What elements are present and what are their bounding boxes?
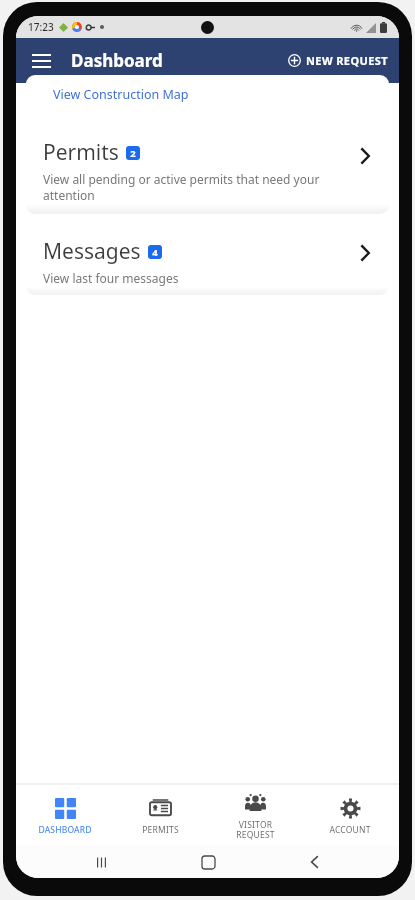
button[interactable]: DASHBOARD (19, 784, 111, 846)
staticText: 2 (130, 147, 136, 160)
button[interactable]: NEW REQUEST (284, 48, 392, 73)
button[interactable]: Messages (26, 227, 389, 295)
button[interactable]: Recent apps (79, 846, 123, 878)
button[interactable]: VISITOR REQUEST (209, 784, 301, 846)
button[interactable]: Home (186, 846, 230, 878)
staticText: View Construction Map (53, 86, 189, 103)
staticText: DASHBOARD (38, 824, 92, 836)
button[interactable]: View Construction Map (26, 75, 389, 107)
staticText: 17:23 (28, 20, 54, 34)
staticText: NEW REQUEST (306, 53, 388, 68)
staticText: ACCOUNT (329, 824, 371, 836)
button[interactable]: ACCOUNT (304, 784, 396, 846)
button[interactable]: Open navigation menu (22, 42, 60, 80)
staticText: PERMITS (142, 824, 179, 836)
staticText: VISITOR REQUEST (236, 819, 275, 840)
staticText: Permits (43, 138, 119, 167)
staticText: 4 (152, 246, 158, 259)
button[interactable]: Permits (26, 126, 389, 214)
staticText: Messages (43, 237, 141, 266)
staticText: Dashboard (71, 49, 163, 72)
staticText: View all pending or active permits that … (43, 171, 320, 203)
button[interactable]: Back (292, 846, 336, 878)
button[interactable]: PERMITS (114, 784, 206, 846)
staticText: View last four messages (43, 270, 179, 286)
